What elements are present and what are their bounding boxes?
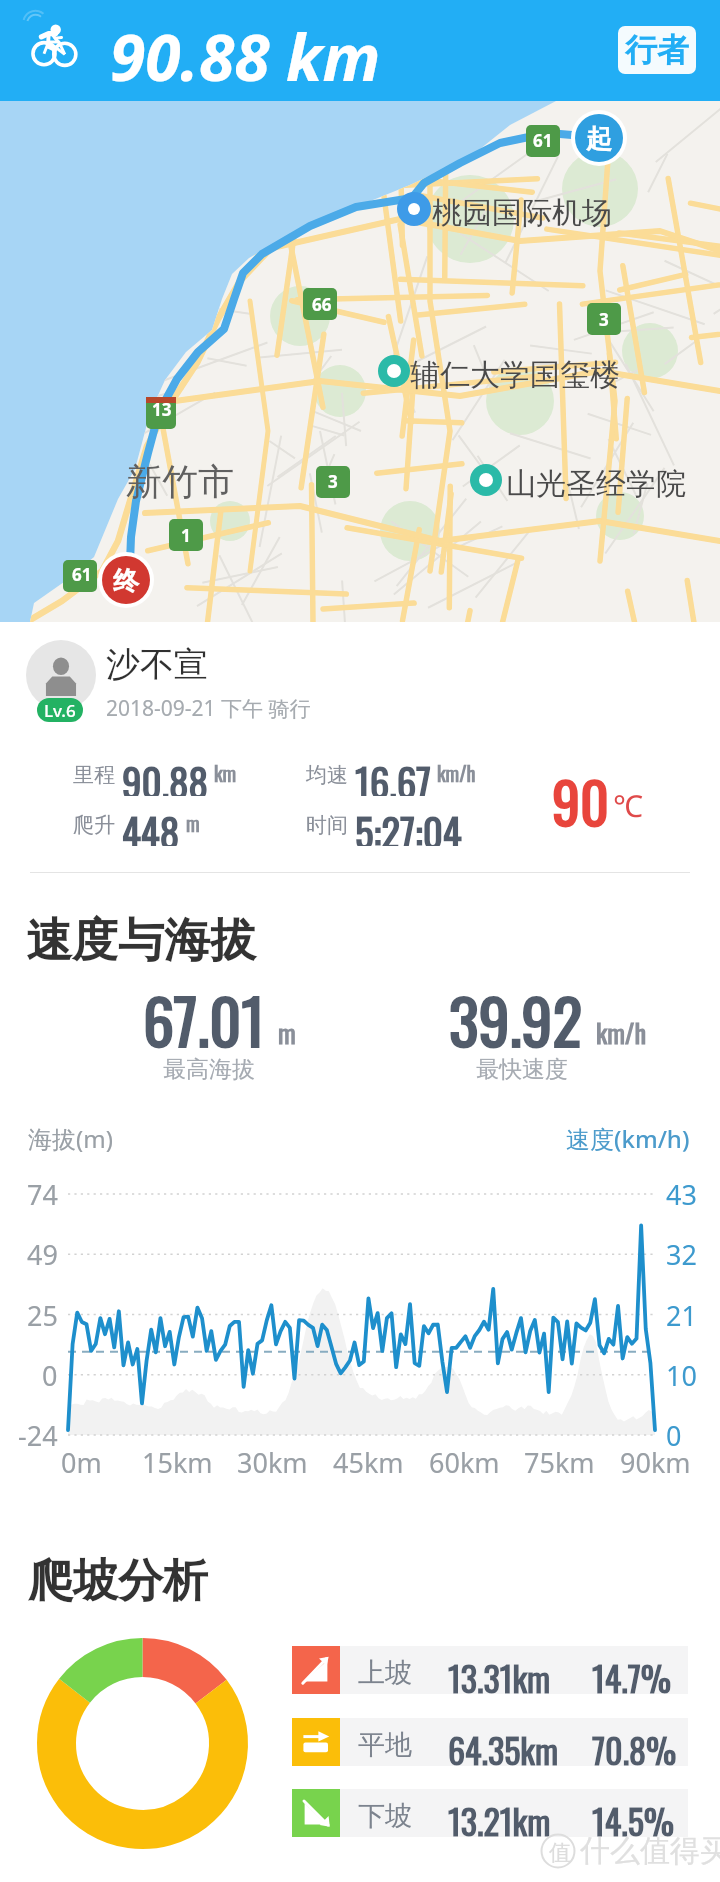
button[interactable]: Route map <box>0 101 720 622</box>
staticText: -24 <box>18 1417 58 1454</box>
staticText: 速度(km/h) <box>566 1122 690 1155</box>
staticText: 上坡 <box>358 1656 412 1690</box>
staticText: 里程 <box>73 762 115 788</box>
staticText: 0 <box>42 1357 58 1394</box>
staticText: 67.01 <box>143 973 265 1065</box>
staticText: 74 <box>27 1176 58 1213</box>
staticText: 3 <box>328 470 338 493</box>
button[interactable]: 平地 <box>292 1718 688 1766</box>
staticText: Lv.6 <box>44 699 76 722</box>
staticText: 下坡 <box>358 1799 412 1833</box>
staticText: 15km <box>142 1444 213 1481</box>
staticText: 25 <box>27 1297 58 1334</box>
staticText: 山光圣经学院 <box>506 465 686 503</box>
staticText: km/h <box>596 1013 646 1052</box>
staticText: 爬坡分析 <box>28 1553 208 1610</box>
staticText: 70.8% <box>592 1724 677 1772</box>
other: Cycling activity <box>18 16 83 78</box>
staticText: 什么值得买 <box>580 1832 720 1870</box>
staticText: 90.88 <box>122 752 208 796</box>
staticText: 13 <box>152 398 172 421</box>
staticText: 桃园国际机场 <box>432 194 612 232</box>
staticText: 32 <box>666 1236 697 1273</box>
staticText: 66 <box>312 293 332 316</box>
staticText: 75km <box>524 1444 595 1481</box>
staticText: 3 <box>599 308 609 331</box>
button[interactable]: Profile photo <box>26 640 96 710</box>
staticText: 14.7% <box>592 1652 672 1700</box>
staticText: 新竹市 <box>126 459 234 504</box>
staticText: ℃ <box>613 785 643 826</box>
staticText: 13.21km <box>448 1795 551 1843</box>
staticText: 0m <box>61 1444 102 1481</box>
staticText: 13.31km <box>448 1652 551 1700</box>
staticText: 64.35km <box>448 1724 559 1772</box>
staticText: 1 <box>181 524 191 547</box>
staticText: 10 <box>666 1357 697 1394</box>
staticText: 90 <box>552 759 610 842</box>
staticText: 16.67 <box>355 752 431 796</box>
staticText: 速度与海拔 <box>26 912 256 970</box>
staticText: 448 <box>122 802 180 846</box>
staticText: 43 <box>666 1176 697 1213</box>
button[interactable]: 行者 <box>618 26 696 74</box>
staticText: km/h <box>437 758 476 788</box>
staticText: 21 <box>666 1297 697 1334</box>
staticText: 沙不宣 <box>106 643 208 686</box>
staticText: 时间 <box>306 812 348 838</box>
staticText: 最快速度 <box>476 1055 568 1084</box>
staticText: 5:27:04 <box>355 802 462 846</box>
staticText: 终 <box>113 565 139 598</box>
staticText: 行者 <box>625 30 689 70</box>
staticText: 海拔(m) <box>28 1122 113 1155</box>
staticText: 14.5% <box>592 1795 675 1843</box>
staticText: 90km <box>620 1444 691 1481</box>
button[interactable]: 下坡 <box>292 1789 688 1837</box>
staticText: 平地 <box>358 1728 412 1762</box>
staticText: 61 <box>533 129 553 152</box>
staticText: km <box>214 758 237 788</box>
button[interactable]: Cycling activity <box>0 0 720 101</box>
staticText: 61 <box>72 563 92 586</box>
staticText: 值 <box>549 1839 571 1867</box>
staticText: 39.92 <box>449 973 583 1065</box>
staticText: 起 <box>586 123 612 156</box>
staticText: 30km <box>237 1444 308 1481</box>
staticText: m <box>278 1013 296 1052</box>
staticText: 爬升 <box>73 812 115 838</box>
staticText: 2018-09-21 下午 骑行 <box>106 694 311 723</box>
staticText: 最高海拔 <box>163 1055 255 1084</box>
staticText: 60km <box>429 1444 500 1481</box>
staticText: 均速 <box>306 762 348 788</box>
staticText: 90.88 km <box>110 13 381 100</box>
button[interactable]: 上坡 <box>292 1646 688 1694</box>
staticText: m <box>186 808 200 838</box>
staticText: 45km <box>333 1444 404 1481</box>
staticText: 0 <box>666 1417 682 1454</box>
staticText: 49 <box>27 1236 58 1273</box>
staticText: 辅仁大学国玺楼 <box>410 356 620 394</box>
